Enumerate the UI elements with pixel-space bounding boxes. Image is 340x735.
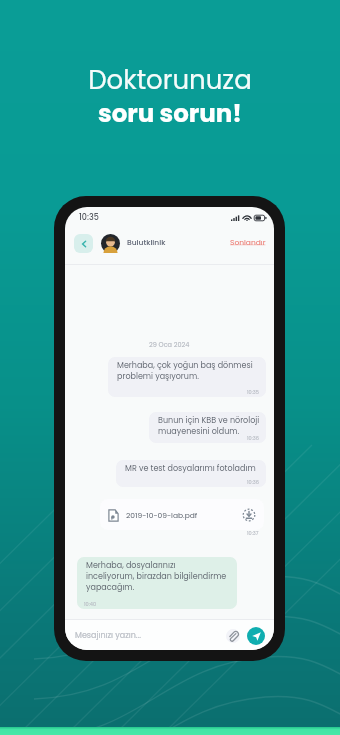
staticText: Sonlandır	[230, 237, 266, 247]
staticText: soru sorun!	[98, 96, 242, 130]
button[interactable]: 2019-10-09-lab.pdf	[100, 499, 264, 530]
staticText: 10:35	[79, 212, 99, 223]
staticText: Bulutklinik	[127, 237, 166, 247]
button[interactable]: Merhaba, dosyalarınızı inceliyorum, bira…	[77, 557, 237, 609]
staticText: Doktorunuza	[88, 62, 252, 98]
button[interactable]: Download file	[242, 508, 256, 522]
staticText: Merhaba, dosyalarınızı inceliyorum, bira…	[86, 560, 227, 592]
staticText: 10:37	[247, 530, 259, 537]
button[interactable]: Mesajınızı yazın...	[75, 620, 265, 650]
button[interactable]: Send message	[247, 627, 265, 645]
button[interactable]: MR ve test dosyalarımı fotoladım	[116, 460, 266, 487]
staticText: Merhaba, çok yoğun baş dönmesi problemi …	[117, 360, 253, 381]
button[interactable]: Attach file	[226, 629, 240, 643]
staticText: 10:36	[247, 479, 259, 486]
button[interactable]: Sonlandır	[227, 234, 269, 250]
staticText: Mesajınızı yazın...	[75, 630, 141, 641]
button[interactable]: Bunun için KBB ve nöroloji muayenesini o…	[149, 412, 266, 443]
staticText: Bunun için KBB ve nöroloji muayenesini o…	[158, 415, 260, 436]
staticText: MR ve test dosyalarımı fotoladım	[125, 463, 256, 474]
button[interactable]: Merhaba, çok yoğun baş dönmesi problemi …	[108, 357, 266, 397]
staticText: 10:40	[84, 601, 97, 608]
staticText: 10:36	[247, 435, 259, 442]
staticText: 2019-10-09-lab.pdf	[126, 510, 198, 520]
staticText: 10:35	[247, 389, 259, 396]
button[interactable]: Back	[74, 234, 93, 253]
staticText: 29 Oca 2024	[149, 340, 190, 349]
